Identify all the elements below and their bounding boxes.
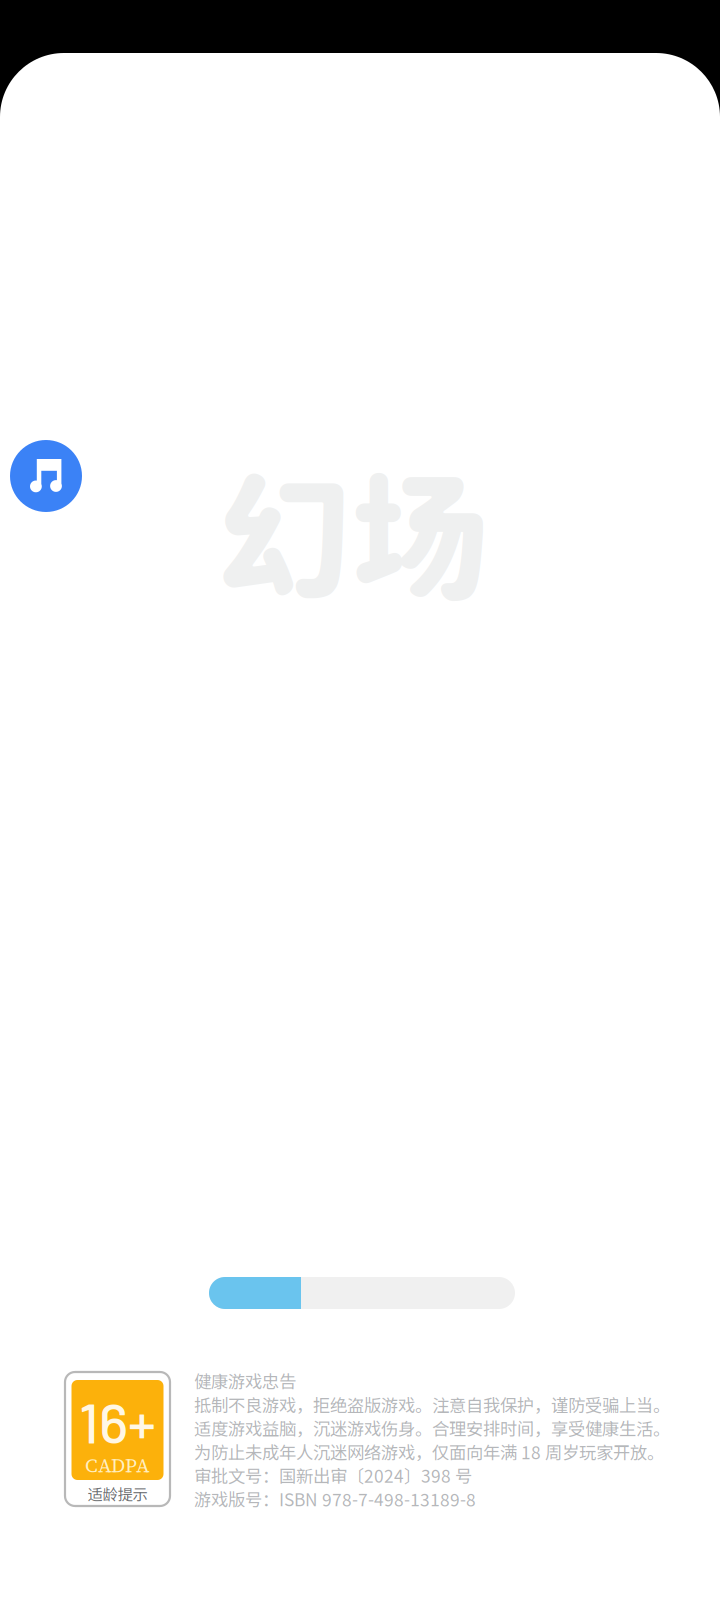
staticText: CADPA bbox=[85, 1452, 150, 1479]
staticText: 幻场 bbox=[214, 455, 488, 617]
staticText: 适度游戏益脑，沉迷游戏伤身。合理安排时间，享受健康生活。 bbox=[194, 1415, 670, 1441]
staticText: 游戏版号：ISBN 978-7-498-13189-8 bbox=[194, 1486, 476, 1511]
staticText: 16+ bbox=[79, 1387, 156, 1455]
button[interactable]: Toggle background music bbox=[10, 440, 82, 512]
staticText: 健康游戏忠告 bbox=[194, 1368, 296, 1393]
staticText: 适龄提示 bbox=[87, 1482, 147, 1505]
staticText: 抵制不良游戏，拒绝盗版游戏。注意自我保护，谨防受骗上当。 bbox=[194, 1392, 670, 1417]
staticText: 为防止未成年人沉迷网络游戏，仅面向年满 18 周岁玩家开放。 bbox=[194, 1439, 664, 1464]
staticText: 审批文号：国新出审〔2024〕398 号 bbox=[194, 1463, 472, 1488]
